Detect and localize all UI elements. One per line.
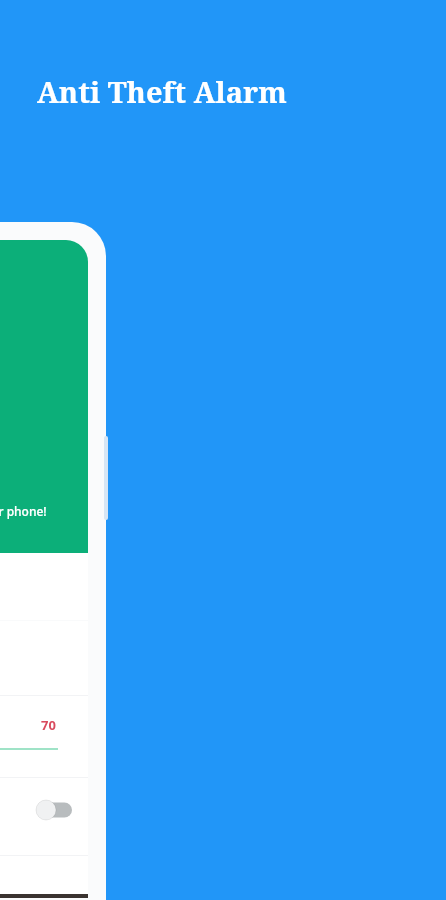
button[interactable]: Toggle alarm bbox=[0, 793, 88, 827]
staticText: 70 bbox=[41, 716, 56, 734]
staticText: …keep an eye on your phone! bbox=[0, 503, 47, 519]
button[interactable]: 70 bbox=[0, 710, 88, 740]
staticText: Anti Theft Alarm bbox=[37, 72, 287, 111]
